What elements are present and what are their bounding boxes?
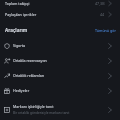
other: Ayrıntılar	[106, 0, 114, 7]
button[interactable]: Ortaklık reklamları	[0, 68, 120, 83]
other: Ayrıntılar	[106, 106, 114, 114]
other: Ayrıntılar	[106, 57, 114, 65]
staticText: Sigorta	[13, 43, 26, 48]
button[interactable]: Paylaşılan içerikler	[0, 11, 120, 18]
staticText: Hediyeler	[13, 88, 30, 93]
staticText: 47,3B	[95, 1, 105, 6]
staticText: Ortaklık reklamları	[13, 73, 45, 78]
staticText: Markanı işbirliğiyle tanıt	[13, 104, 54, 109]
other: Ayrıntılar	[106, 72, 114, 80]
staticText: 44	[100, 12, 105, 17]
staticText: Araçlarım	[5, 27, 28, 33]
other: Ayrıntılar	[106, 11, 114, 18]
other: Ayrıntılar	[106, 42, 114, 50]
staticText: Bir ortaklık gönderisiyle markanı tanıt	[13, 111, 70, 115]
button[interactable]: Markanı işbirliğiyle tanıt	[0, 101, 120, 118]
button[interactable]: Toplam takipçi	[0, 0, 120, 7]
button[interactable]: Tümünü gör	[95, 28, 116, 33]
staticText: Toplam takipçi	[5, 1, 30, 6]
button[interactable]: Hediyeler	[0, 83, 120, 98]
staticText: Tümünü gör	[95, 28, 116, 33]
other: Ayrıntılar	[106, 87, 114, 95]
button[interactable]: Sigorta	[0, 38, 120, 53]
staticText: Paylaşılan içerikler	[5, 12, 37, 17]
staticText: Ortakla rezervasyon	[13, 58, 47, 63]
button[interactable]: Ortakla rezervasyon	[0, 53, 120, 68]
